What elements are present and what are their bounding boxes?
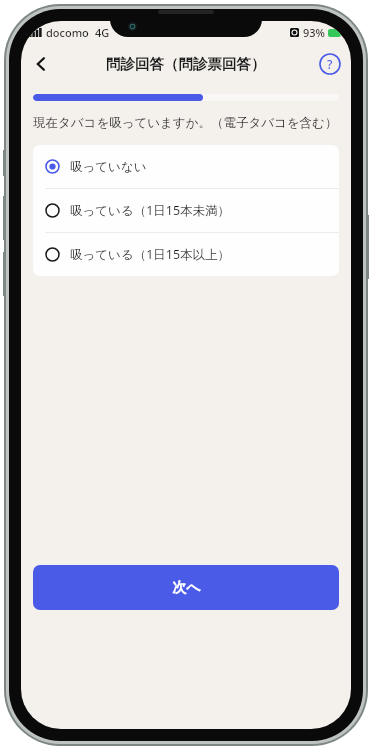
button[interactable]: 吸っていない [33,145,339,188]
staticText: 吸っている（1日15本以上） [70,246,231,263]
button[interactable]: 吸っている（1日15本未満） [33,189,339,232]
staticText: 問診回答（問診票回答） [106,55,266,73]
staticText: ? [327,56,333,72]
staticText: 吸っていない [70,159,147,175]
staticText: 現在タバコを吸っていますか。（電子タバコを含む） [33,115,338,131]
staticText: 次へ [172,579,201,597]
button[interactable]: Help [315,49,345,79]
button[interactable]: 次へ [33,565,339,610]
button[interactable]: 吸っている（1日15本以上） [33,233,339,276]
staticText: 4G [95,25,110,40]
staticText: docomo [46,25,89,40]
staticText: 93% [303,25,325,40]
staticText: 吸っている（1日15本未満） [70,202,231,219]
button[interactable]: Back [21,44,61,84]
